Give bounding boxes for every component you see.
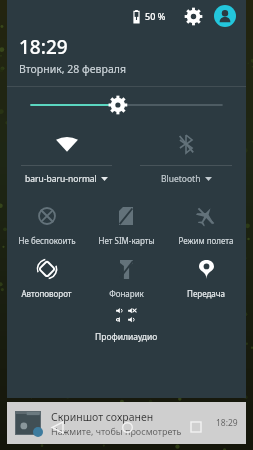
button[interactable]: Location [168,256,244,299]
button[interactable]: Back [44,414,70,440]
staticText: 50 % [145,10,166,22]
button[interactable]: Airplane mode [168,203,244,246]
staticText: Режим полета [178,235,234,246]
button[interactable]: Brightness [7,87,246,123]
button[interactable]: Recents [183,414,209,440]
button[interactable]: Auto rotate [9,256,84,299]
staticText: Скриншот сохранен [51,410,154,424]
button[interactable]: User [214,5,236,27]
staticText: 18:29 [19,34,68,60]
staticText: Фонарик [109,288,144,299]
button[interactable]: Do not disturb [9,203,84,246]
button[interactable]: Flashlight [88,256,164,299]
button[interactable]: Скриншот сохранен [7,402,246,444]
staticText: baru-baru-normal [25,173,97,185]
button[interactable]: Home [114,414,140,440]
button[interactable]: No SIM card [88,203,164,246]
button[interactable]: Audio profile [7,307,246,343]
button[interactable]: Bluetooth [140,123,232,193]
staticText: Автоповорот [21,288,72,299]
staticText: Нажмите, чтобы просмотреть [51,425,182,437]
staticText: Не беспокоить [18,235,76,246]
staticText: Передача геоданных [168,288,244,299]
staticText: Нет SIM-карты [98,235,155,246]
staticText: Bluetooth [161,173,201,185]
button[interactable]: Settings [180,3,206,29]
staticText: Профилиаудио [95,331,158,343]
staticText: 18:29 [216,417,238,429]
staticText: Вторник, 28 февраля [19,62,126,76]
button[interactable]: Wi-Fi [21,123,112,193]
